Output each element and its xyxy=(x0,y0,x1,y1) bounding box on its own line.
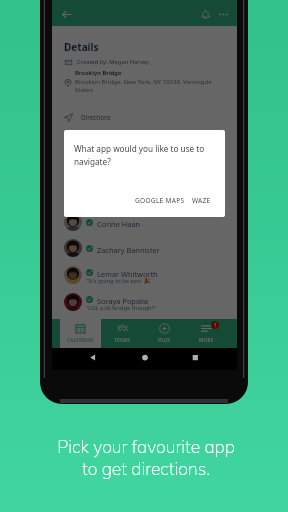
staticText: Lemar Whitworth xyxy=(97,269,158,279)
staticText: Pick your favourite app xyxy=(57,436,235,458)
staticText: 1 xyxy=(214,322,217,329)
staticText: Soraya Popalia xyxy=(97,296,149,306)
staticText: Zachary Bannister xyxy=(97,245,160,255)
button[interactable]: Directions xyxy=(52,108,237,127)
button[interactable]: Corine Haan xyxy=(52,209,237,236)
staticText: "It's going to be epic 🎉 xyxy=(86,277,151,285)
staticText: MORE xyxy=(199,337,214,343)
staticText: GOOGLE MAPS xyxy=(135,196,185,205)
staticText: Brooklyn Bridge xyxy=(75,69,122,77)
button[interactable]: CALENDAR xyxy=(60,319,101,348)
button[interactable]: WAZE xyxy=(192,196,211,205)
button[interactable]: Soraya Popalia xyxy=(52,289,237,316)
staticText: Corine Haan xyxy=(97,219,141,229)
staticText: WAZE xyxy=(192,196,211,205)
button[interactable]: TEAMS xyxy=(101,319,143,348)
staticText: PLUS xyxy=(158,337,171,343)
button[interactable]: Lemar Whitworth xyxy=(52,262,237,289)
button[interactable]: 1 xyxy=(185,319,227,348)
button[interactable]: Notifications xyxy=(196,5,214,23)
staticText: Brooklyn Bridge, New York, NY 10038, Ver… xyxy=(75,78,214,94)
button[interactable]: Zachary Bannister xyxy=(52,235,237,262)
staticText: Details xyxy=(64,40,99,54)
staticText: TEAMS xyxy=(114,337,131,343)
button[interactable]: More options xyxy=(214,5,232,23)
staticText: CALENDAR xyxy=(67,337,94,343)
staticText: Created by: Megan Harvey xyxy=(77,58,149,66)
staticText: to get directions. xyxy=(82,458,210,480)
button[interactable]: PLUS xyxy=(143,319,185,348)
staticText: "LOL y'all bridge though?" xyxy=(86,304,157,312)
button[interactable]: Back xyxy=(57,5,75,23)
button[interactable]: GOOGLE MAPS xyxy=(135,196,185,205)
staticText: What app would you like to use to naviga… xyxy=(74,143,206,168)
staticText: Directions xyxy=(81,113,111,122)
